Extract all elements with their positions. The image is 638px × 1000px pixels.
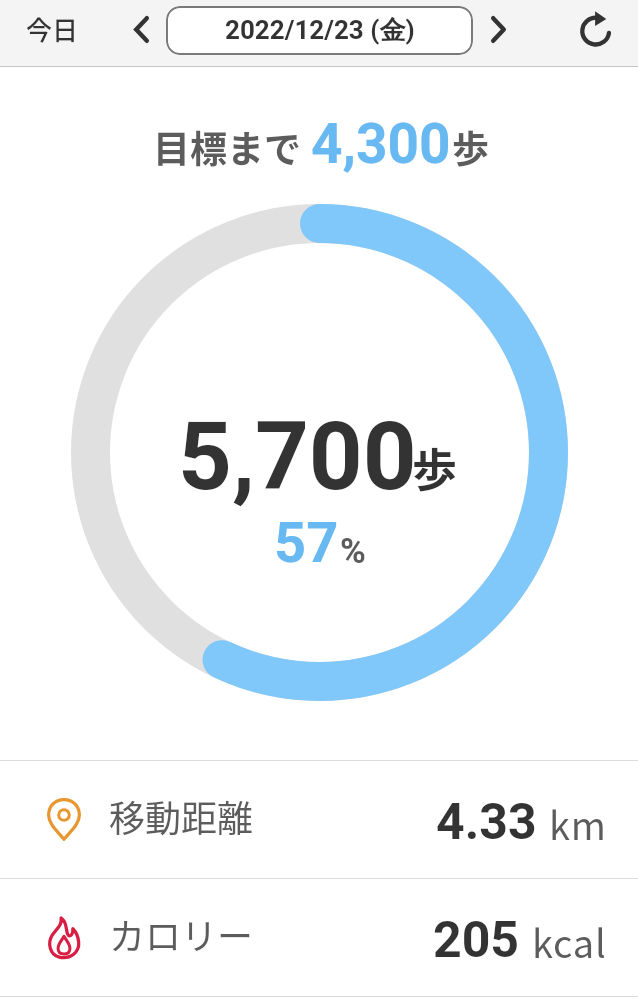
button[interactable]: Previous day (121, 9, 161, 49)
staticText: 5,700 (178, 402, 417, 512)
staticText: 今日 (26, 10, 79, 48)
staticText: カロリー (109, 908, 254, 960)
staticText: 目標まで (153, 120, 301, 174)
staticText: 205 (433, 911, 520, 963)
button[interactable]: Refresh (573, 9, 618, 54)
button[interactable]: カロリー (0, 879, 638, 996)
staticText: 移動距離 (109, 790, 254, 842)
staticText: 歩 (412, 435, 458, 500)
staticText: km (549, 796, 607, 848)
button[interactable]: 今日 (26, 0, 79, 67)
staticText: 歩 (452, 120, 489, 174)
staticText: kcal (532, 914, 607, 966)
staticText: 57 (274, 510, 339, 576)
staticText: 2022/12/23 (金) (225, 14, 415, 47)
button[interactable]: 移動距離 (0, 761, 638, 878)
button[interactable]: 2022/12/23 (金) (166, 6, 473, 55)
staticText: % (340, 531, 366, 572)
staticText: 4.33 (436, 793, 537, 845)
staticText: 4,300 (311, 112, 451, 176)
button[interactable]: Next day (478, 9, 518, 49)
